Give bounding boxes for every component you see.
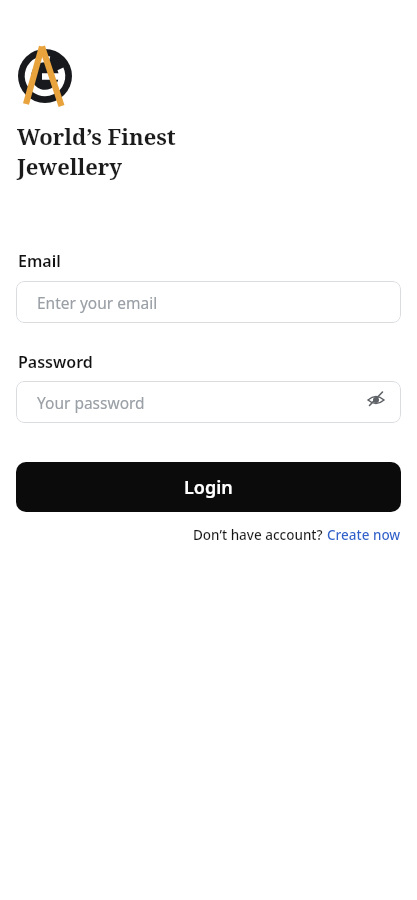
staticText: Don’t have account? <box>193 526 327 544</box>
staticText: Email <box>18 250 61 272</box>
staticText: Enter your email <box>37 292 158 313</box>
button[interactable]: Your password <box>16 381 401 423</box>
button[interactable]: Login <box>16 462 401 512</box>
staticText: World’s Finest Jewellery <box>17 121 176 181</box>
staticText: Login <box>184 475 233 500</box>
button[interactable]: Create now <box>327 526 401 544</box>
button[interactable]: Enter your email <box>16 281 401 323</box>
staticText: Your password <box>37 392 145 413</box>
staticText: Password <box>18 351 93 373</box>
